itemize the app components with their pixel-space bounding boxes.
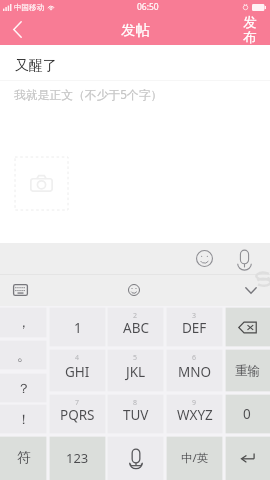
staticText: JKL	[126, 363, 146, 381]
button[interactable]: Enter	[224, 435, 270, 480]
staticText: 我就是正文（不少于5个字）	[14, 86, 163, 102]
staticText: WXYZ	[177, 406, 213, 424]
staticText: 1	[74, 319, 82, 337]
staticText: 重输	[235, 363, 260, 379]
staticText: ！	[17, 411, 31, 428]
staticText: TUV	[123, 406, 149, 424]
button[interactable]: Keyboard	[7, 274, 33, 306]
staticText: 4	[75, 353, 80, 363]
staticText: 8	[133, 398, 138, 408]
button[interactable]: Emoji keyboard	[121, 274, 147, 306]
staticText: 中国移动	[14, 3, 44, 12]
staticText: MNO	[178, 363, 212, 381]
staticText: ，	[17, 314, 31, 331]
button[interactable]: 。	[0, 339, 48, 371]
staticText: 符	[17, 449, 31, 466]
button[interactable]: Back	[0, 14, 34, 45]
staticText: 3	[192, 311, 197, 321]
staticText: PQRS	[60, 406, 95, 424]
staticText: 。	[17, 347, 31, 364]
button[interactable]: 符	[0, 435, 48, 480]
button[interactable]: 发布	[230, 14, 270, 45]
button[interactable]: MNO	[165, 348, 224, 393]
button[interactable]: 重输	[224, 348, 270, 393]
button[interactable]: ABC	[106, 306, 165, 348]
staticText: GHI	[65, 363, 90, 381]
button[interactable]: Emoji	[190, 243, 218, 274]
staticText: 5	[133, 353, 138, 363]
button[interactable]: 123	[48, 435, 107, 480]
button[interactable]: DEF	[165, 306, 224, 348]
staticText: 6	[192, 353, 197, 363]
staticText: 9	[192, 398, 197, 408]
staticText: 发布	[243, 14, 257, 45]
button[interactable]: PQRS	[48, 393, 107, 435]
staticText: 又醒了	[15, 57, 57, 75]
button[interactable]: 0	[224, 393, 270, 435]
staticText: 7	[75, 398, 80, 408]
staticText: 发帖	[121, 21, 150, 39]
staticText: 0	[243, 405, 251, 423]
button[interactable]: Hide keyboard	[238, 274, 264, 306]
button[interactable]: 中/英	[165, 435, 224, 480]
button[interactable]: TUV	[106, 393, 165, 435]
button[interactable]: ？	[0, 372, 48, 404]
button[interactable]: GHI	[48, 348, 107, 393]
button[interactable]: 1	[48, 306, 107, 348]
staticText: ABC	[123, 319, 149, 337]
staticText: ？	[17, 380, 31, 397]
staticText: DEF	[182, 319, 207, 337]
staticText: 中/英	[181, 450, 209, 466]
staticText: 123	[66, 449, 89, 467]
staticText: 2	[133, 311, 138, 321]
button[interactable]: Voice input	[230, 243, 258, 274]
button[interactable]: ，	[0, 306, 48, 339]
button[interactable]: Backspace	[224, 306, 270, 348]
button[interactable]: ！	[0, 403, 48, 435]
button[interactable]: WXYZ	[165, 393, 224, 435]
button[interactable]: Add photo	[15, 157, 68, 210]
button[interactable]: Voice input	[106, 435, 165, 480]
button[interactable]: JKL	[106, 348, 165, 393]
staticText: 06:50	[137, 1, 159, 13]
